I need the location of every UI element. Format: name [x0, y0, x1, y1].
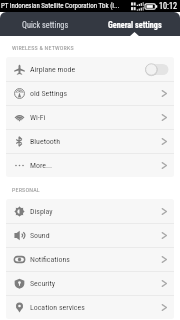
staticText: old Settings: [30, 89, 68, 98]
button[interactable]: Notifications: [6, 247, 174, 271]
button[interactable]: Wi-Fi: [6, 105, 174, 129]
staticText: 10:12: [159, 1, 178, 11]
button[interactable]: General settings: [90, 12, 180, 36]
button[interactable]: Security: [6, 271, 174, 295]
staticText: PERSONAL: [12, 186, 40, 193]
staticText: WIRELESS & NETWORKS: [12, 44, 74, 51]
staticText: Airplane mode: [30, 65, 76, 74]
staticText: PT Indonesian Satellite Corporation Tbk …: [1, 2, 120, 10]
staticText: Wi-Fi: [30, 113, 46, 122]
button[interactable]: Sound: [6, 223, 174, 247]
staticText: Display: [30, 207, 53, 216]
button[interactable]: old Settings: [6, 81, 174, 105]
staticText: Quick settings: [22, 20, 69, 30]
button[interactable]: More...: [6, 153, 174, 177]
button[interactable]: Airplane mode toggle: [145, 63, 169, 76]
button[interactable]: Quick settings: [0, 12, 90, 36]
button[interactable]: Location services: [6, 295, 174, 319]
staticText: More...: [30, 161, 53, 170]
button[interactable]: Bluetooth: [6, 129, 174, 153]
staticText: Security: [30, 279, 56, 288]
staticText: Notifications: [30, 255, 70, 264]
button[interactable]: Display: [6, 199, 174, 223]
staticText: Bluetooth: [30, 137, 60, 146]
button[interactable]: Airplane mode: [6, 57, 174, 81]
staticText: Sound: [30, 231, 50, 240]
staticText: General settings: [108, 20, 162, 30]
staticText: Location services: [30, 303, 85, 312]
